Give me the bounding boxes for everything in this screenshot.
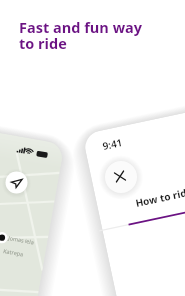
staticText: Fast and fun way to ride: [19, 18, 143, 54]
staticText: 9:41: [101, 135, 124, 153]
staticText: Jomas iela: [8, 234, 35, 245]
staticText: How to ride: [134, 184, 185, 210]
staticText: Katrepa: [3, 247, 25, 257]
